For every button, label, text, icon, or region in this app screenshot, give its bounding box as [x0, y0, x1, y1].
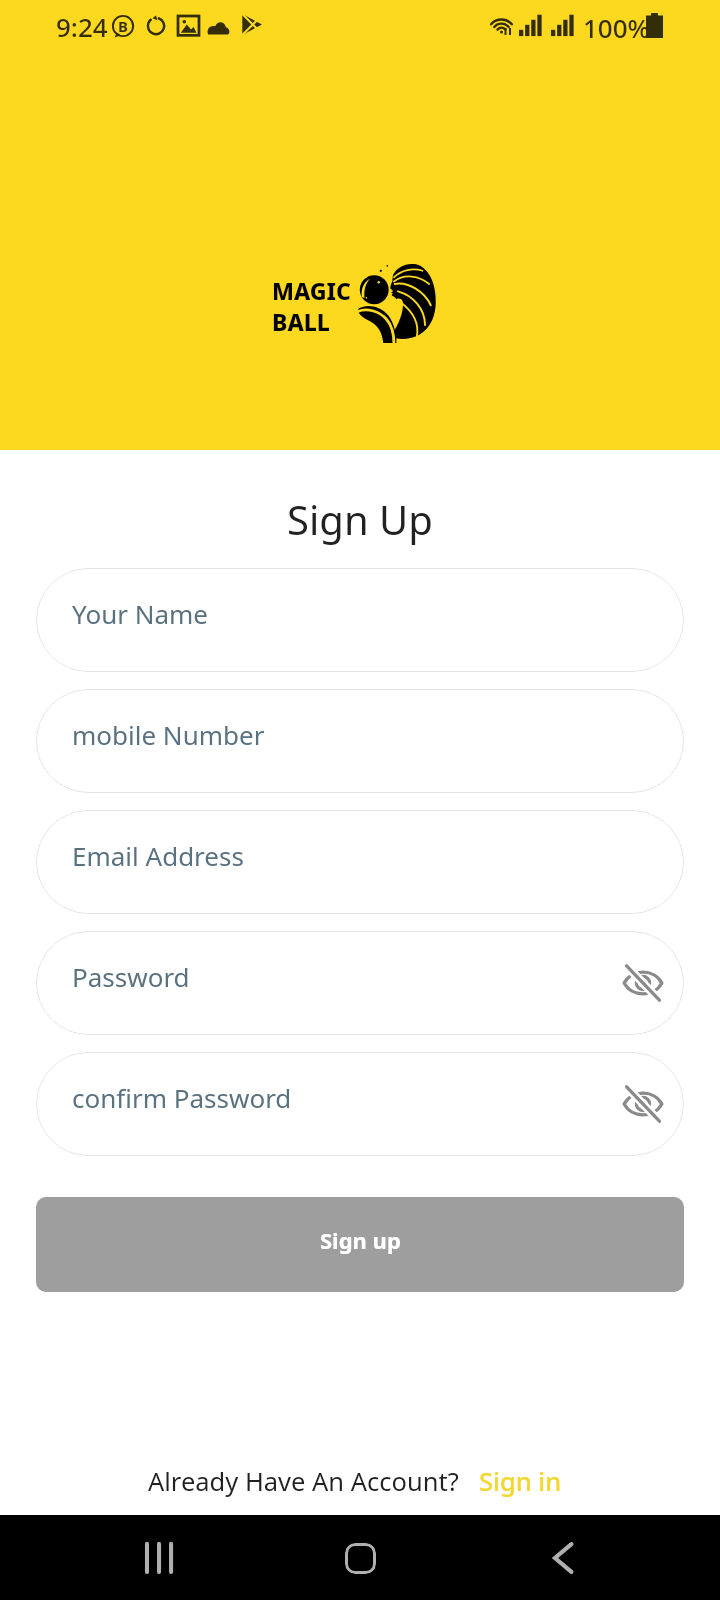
button[interactable]: Back — [531, 1526, 595, 1590]
button[interactable]: mobile Number — [36, 689, 684, 793]
staticText: MAGIC — [272, 275, 351, 306]
staticText: Your Name — [72, 596, 209, 631]
staticText: 9:24 — [56, 9, 108, 44]
button[interactable]: Your Name — [36, 568, 684, 672]
staticText: mobile Number — [72, 717, 265, 752]
button[interactable]: Show password — [619, 1080, 667, 1128]
button[interactable]: Recents — [125, 1526, 189, 1590]
button[interactable]: confirm Password — [36, 1052, 684, 1156]
staticText: Sign up — [320, 1225, 401, 1255]
staticText: BALL — [272, 306, 330, 337]
button[interactable]: Show password — [619, 959, 667, 1007]
staticText: Email Address — [72, 838, 244, 873]
staticText: confirm Password — [72, 1080, 292, 1115]
button[interactable]: Sign up — [36, 1197, 684, 1292]
button[interactable]: Home — [328, 1526, 392, 1590]
staticText: Sign Up — [0, 492, 720, 546]
button[interactable]: Sign in — [479, 1464, 562, 1499]
button[interactable]: Email Address — [36, 810, 684, 914]
staticText: B — [118, 16, 128, 36]
staticText: 100% — [583, 10, 650, 45]
staticText: Password — [72, 959, 190, 994]
staticText: Sign in — [479, 1464, 562, 1499]
button[interactable]: Password — [36, 931, 684, 1035]
staticText: Already Have An Account? — [148, 1464, 459, 1499]
